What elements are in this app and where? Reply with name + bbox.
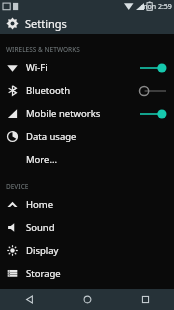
staticText: WIRELESS & NETWORKS — [6, 45, 80, 54]
button[interactable]: Toggle on — [138, 61, 168, 75]
staticText: Home — [26, 198, 168, 211]
staticText: Data usage — [26, 130, 168, 143]
button[interactable]: Recent apps — [116, 289, 174, 310]
staticText: More... — [26, 153, 168, 166]
button[interactable]: Display — [0, 239, 174, 262]
button[interactable]: Mobile networks — [0, 102, 174, 125]
button[interactable]: Toggle off — [138, 84, 168, 98]
staticText: Bluetooth — [26, 84, 138, 97]
staticText: Display — [26, 244, 168, 257]
staticText: DEVICE — [6, 182, 29, 191]
staticText: Settings — [25, 16, 67, 31]
button[interactable]: Bluetooth — [0, 79, 174, 102]
button[interactable]: Sound — [0, 216, 174, 239]
button[interactable]: Data usage — [0, 125, 174, 148]
button[interactable]: Home — [58, 289, 116, 310]
button[interactable]: Back — [0, 289, 58, 310]
button[interactable]: Storage — [0, 262, 174, 285]
staticText: Mobile networks — [26, 107, 138, 120]
staticText: Sound — [26, 221, 168, 234]
other: Settings — [6, 17, 19, 30]
staticText: Wi-Fi — [26, 61, 138, 74]
button[interactable]: More... — [0, 148, 174, 171]
button[interactable]: Home — [0, 193, 174, 216]
button[interactable]: Toggle on — [138, 107, 168, 121]
staticText: mon 2:59 — [141, 2, 172, 12]
button[interactable]: Wi-Fi — [0, 56, 174, 79]
staticText: Storage — [26, 267, 168, 280]
